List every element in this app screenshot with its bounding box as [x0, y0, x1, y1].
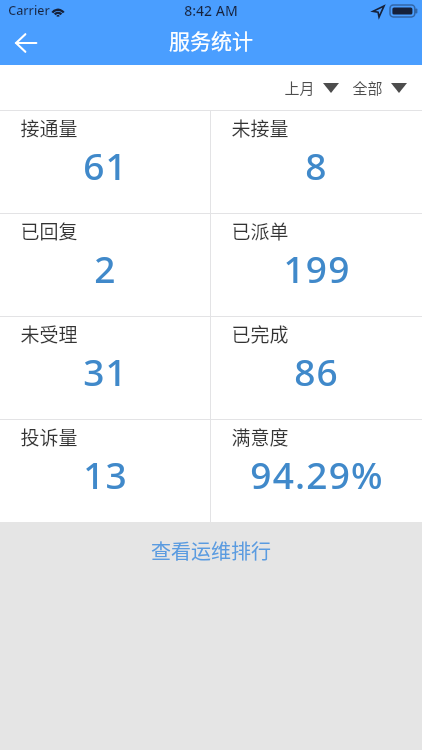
staticText: 已完成 [231, 320, 289, 348]
button[interactable]: 接通量 [0, 111, 210, 213]
button[interactable]: 已派单 [211, 214, 422, 316]
button[interactable]: 全部 [352, 71, 407, 105]
staticText: 接通量 [20, 114, 78, 142]
staticText: 199 [283, 243, 351, 293]
staticText: 查看运维排行 [151, 536, 271, 565]
button[interactable]: 上月 [284, 71, 339, 105]
staticText: 31 [83, 346, 128, 396]
staticText: 服务统计 [169, 25, 253, 55]
button[interactable]: Back [1, 23, 51, 63]
button[interactable]: 未接量 [211, 111, 422, 213]
staticText: 已派单 [231, 217, 289, 245]
staticText: 满意度 [231, 423, 289, 451]
button[interactable]: 满意度 [211, 420, 422, 522]
button[interactable]: 投诉量 [0, 420, 210, 522]
staticText: 未受理 [20, 320, 78, 348]
staticText: 上月 [284, 77, 315, 99]
button[interactable]: 已回复 [0, 214, 210, 316]
staticText: 未接量 [231, 114, 289, 142]
staticText: 86 [294, 346, 339, 396]
button[interactable]: 已完成 [211, 317, 422, 419]
staticText: 2 [94, 243, 117, 293]
staticText: 13 [83, 449, 128, 499]
button[interactable]: 查看运维排行 [135, 530, 287, 571]
staticText: 94.29% [250, 449, 384, 499]
staticText: Carrier [8, 2, 50, 19]
staticText: 投诉量 [20, 423, 78, 451]
staticText: 全部 [352, 77, 383, 99]
staticText: 已回复 [20, 217, 78, 245]
staticText: 8 [305, 140, 328, 190]
staticText: 8:42 AM [184, 1, 238, 20]
button[interactable]: 未受理 [0, 317, 210, 419]
staticText: 61 [83, 140, 128, 190]
